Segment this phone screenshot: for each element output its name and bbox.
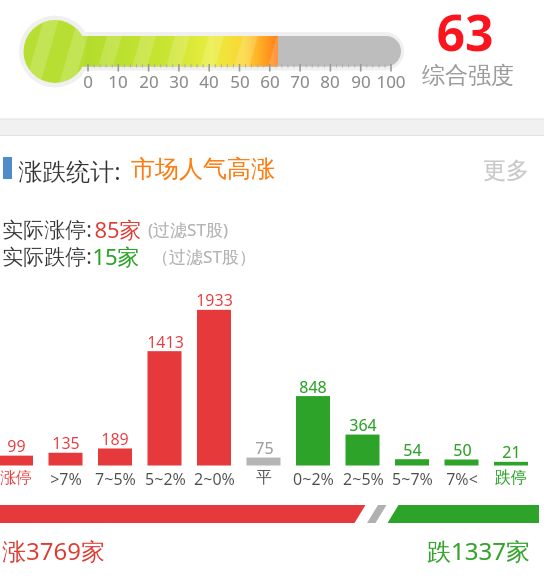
- staticText: （过滤ST股）: [152, 245, 256, 268]
- staticText: 848: [299, 376, 327, 398]
- staticText: 5~7%: [392, 468, 433, 490]
- staticText: 20: [139, 70, 159, 93]
- staticText: 90: [351, 70, 371, 93]
- staticText: 7~5%: [95, 468, 136, 490]
- staticText: 54: [403, 439, 422, 461]
- staticText: 涨跌统计:: [18, 154, 121, 187]
- staticText: 更多: [483, 156, 529, 185]
- staticText: 40: [199, 70, 219, 93]
- staticText: 1413: [147, 331, 184, 353]
- staticText: 15家: [92, 241, 140, 271]
- staticText: 80: [320, 70, 340, 93]
- staticText: 60: [260, 70, 280, 93]
- staticText: 综合强度: [422, 61, 514, 90]
- staticText: 5~2%: [145, 468, 186, 490]
- staticText: 100: [376, 70, 406, 93]
- staticText: 364: [349, 414, 377, 436]
- staticText: 平: [256, 468, 272, 488]
- staticText: 85家: [94, 214, 142, 244]
- staticText: 跌停: [495, 468, 527, 488]
- staticText: 30: [169, 70, 189, 93]
- staticText: 50: [230, 70, 250, 93]
- staticText: 2~0%: [194, 468, 235, 490]
- staticText: (过滤ST股): [148, 218, 228, 241]
- staticText: 189: [101, 428, 129, 450]
- staticText: 99: [7, 435, 26, 457]
- staticText: 10: [108, 70, 128, 93]
- staticText: 135: [52, 432, 80, 454]
- staticText: 实际跌停:: [2, 242, 92, 271]
- staticText: 21: [502, 441, 521, 463]
- staticText: 75: [255, 437, 274, 459]
- staticText: 2~5%: [343, 468, 384, 490]
- staticText: 7%<: [446, 468, 478, 490]
- staticText: 63: [436, 0, 494, 66]
- staticText: 50: [453, 439, 472, 461]
- staticText: 市场人气高涨: [131, 154, 275, 184]
- staticText: 涨停: [0, 468, 32, 488]
- staticText: 0~2%: [293, 468, 334, 490]
- staticText: 跌1337家: [427, 534, 530, 567]
- staticText: 70: [290, 70, 310, 93]
- staticText: 实际涨停:: [2, 215, 92, 244]
- staticText: 涨3769家: [2, 534, 105, 567]
- staticText: 0: [83, 70, 93, 93]
- staticText: >7%: [50, 468, 82, 490]
- staticText: 1933: [196, 289, 233, 311]
